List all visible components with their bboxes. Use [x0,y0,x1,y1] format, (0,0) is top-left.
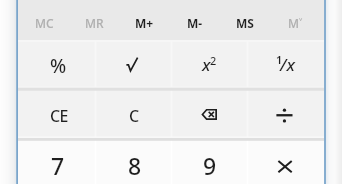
staticText: x [202,53,211,76]
staticText: CE [50,105,68,127]
staticText: 7 [51,150,65,181]
staticText: 2 [210,53,217,68]
button[interactable]: M+ [119,5,169,40]
button[interactable]: x [172,41,248,89]
staticText: MS [236,15,254,31]
button[interactable]: 1 [248,41,324,89]
staticText: /x [280,53,295,76]
button[interactable]: MS [220,5,270,40]
button[interactable]: 9 [172,140,248,184]
staticText: MR [85,15,104,31]
button[interactable]: Multiply [248,140,324,184]
button[interactable]: MC [19,5,69,40]
button[interactable]: M˅ [270,5,320,40]
button[interactable]: 8 [96,140,172,184]
staticText: M- [187,15,203,31]
staticText: % [50,53,67,79]
staticText: MC [35,15,54,31]
button[interactable]: M- [170,5,220,40]
staticText: 8 [128,150,142,181]
staticText: M˅ [288,15,303,31]
staticText: 1 [276,52,283,67]
button[interactable]: Backspace [172,89,248,139]
button[interactable]: MR [69,5,119,40]
staticText: C [129,105,140,127]
staticText: 9 [203,150,217,181]
button[interactable]: C [96,89,172,139]
button[interactable]: % [20,41,96,89]
button[interactable]: Divide [248,89,324,139]
staticText: M+ [135,15,154,31]
button[interactable]: CE [20,89,96,139]
button[interactable]: Square root [96,41,172,89]
button[interactable]: 7 [20,140,96,184]
